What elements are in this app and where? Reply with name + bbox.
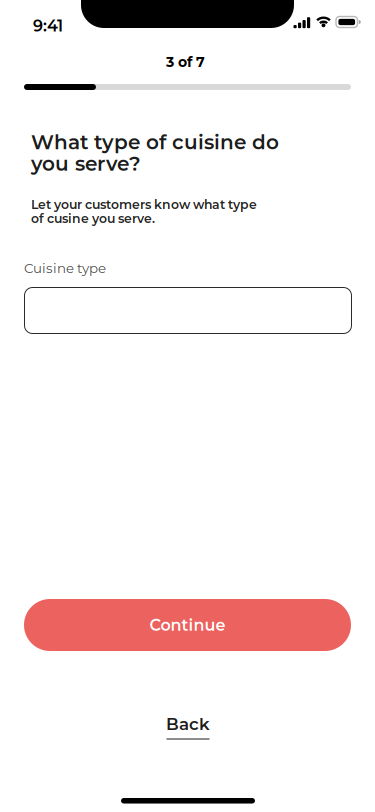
button[interactable]: Continue [24,599,351,651]
staticText: Continue [149,615,225,635]
staticText: Back [166,714,210,734]
staticText: you serve? [31,151,141,176]
button[interactable]: Cuisine type [24,287,351,333]
staticText: Let your customers know what type [31,197,257,212]
staticText: Cuisine type [24,260,106,276]
button[interactable]: Back [128,715,248,749]
staticText: 9:41 [33,16,63,35]
staticText: What type of cuisine do [31,130,279,154]
staticText: 3 of 7 [166,53,205,71]
staticText: of cusine you serve. [31,211,155,226]
